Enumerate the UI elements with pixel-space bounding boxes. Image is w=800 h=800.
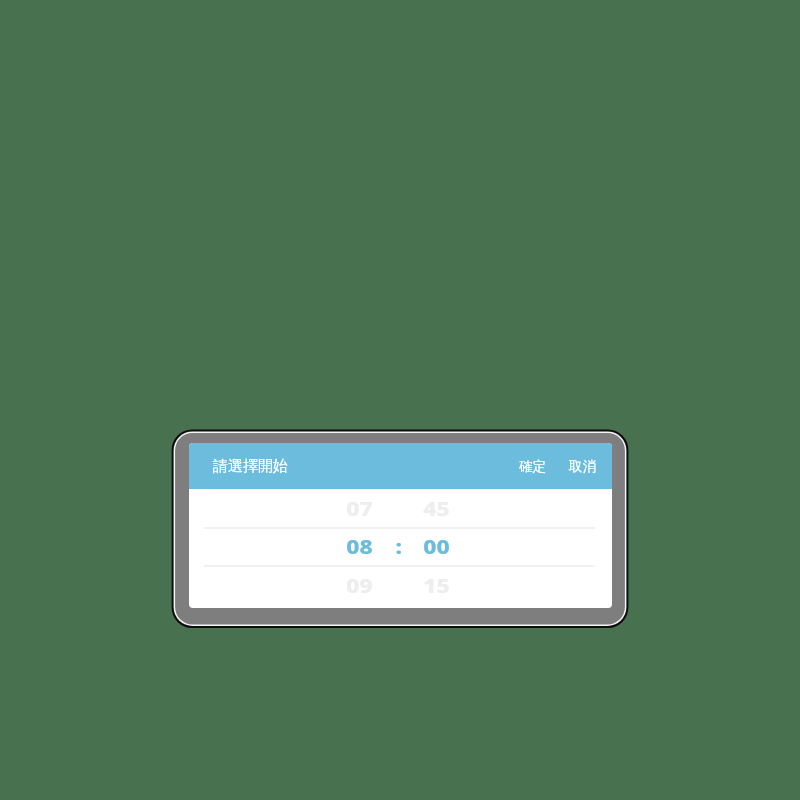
- staticText: 確定: [519, 458, 546, 475]
- staticText: 請選擇開始: [213, 457, 288, 476]
- button[interactable]: 取消: [567, 454, 598, 479]
- button[interactable]: 確定: [517, 454, 548, 479]
- staticText: 08: [346, 533, 374, 560]
- staticText: 15: [423, 572, 451, 599]
- button[interactable]: Hour 09: [335, 566, 385, 604]
- staticText: :: [396, 533, 402, 560]
- staticText: 00: [423, 533, 451, 560]
- staticText: 45: [423, 495, 451, 522]
- button[interactable]: Minute 00: [412, 527, 462, 565]
- button[interactable]: Minute 45: [412, 489, 462, 527]
- staticText: 09: [346, 572, 374, 599]
- button[interactable]: Hour 07: [335, 489, 385, 527]
- staticText: 取消: [569, 458, 596, 475]
- staticText: 07: [346, 495, 374, 522]
- button[interactable]: Hour 08: [335, 527, 385, 565]
- button[interactable]: Minute 15: [412, 566, 462, 604]
